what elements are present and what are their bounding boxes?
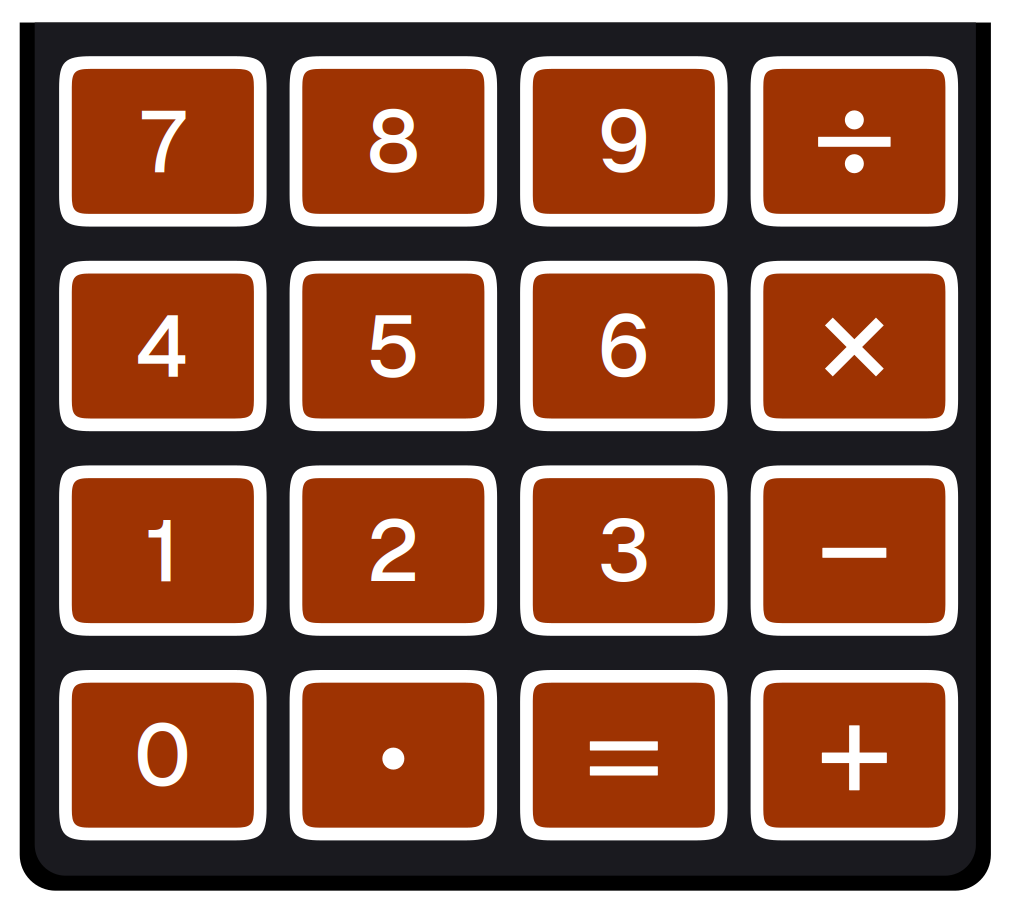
button[interactable]: Decimal point bbox=[290, 670, 497, 840]
button[interactable]: Multiply bbox=[751, 261, 958, 431]
button[interactable]: 9 bbox=[520, 56, 728, 227]
staticText: 5 bbox=[366, 290, 421, 401]
button[interactable]: 3 bbox=[520, 465, 728, 636]
button[interactable]: Add bbox=[751, 670, 958, 840]
staticText: 8 bbox=[367, 86, 420, 197]
button[interactable]: 8 bbox=[290, 56, 497, 227]
button[interactable]: 2 bbox=[290, 465, 497, 636]
staticText: 1 bbox=[145, 495, 180, 606]
staticText: 2 bbox=[366, 495, 420, 606]
button[interactable]: 0 bbox=[59, 670, 267, 840]
staticText: 6 bbox=[597, 290, 651, 401]
button[interactable]: 7 bbox=[59, 56, 267, 227]
staticText: 7 bbox=[140, 86, 185, 197]
staticText: 0 bbox=[134, 700, 192, 811]
button[interactable]: Equals bbox=[520, 670, 728, 840]
button[interactable]: 5 bbox=[290, 261, 497, 431]
button[interactable]: Divide bbox=[751, 56, 958, 227]
staticText: 9 bbox=[597, 86, 651, 197]
button[interactable]: 1 bbox=[59, 465, 267, 636]
staticText: 3 bbox=[597, 495, 650, 606]
button[interactable]: Subtract bbox=[751, 465, 958, 636]
button[interactable]: 4 bbox=[59, 261, 267, 431]
staticText: 4 bbox=[136, 290, 190, 401]
button[interactable]: 6 bbox=[520, 261, 728, 431]
